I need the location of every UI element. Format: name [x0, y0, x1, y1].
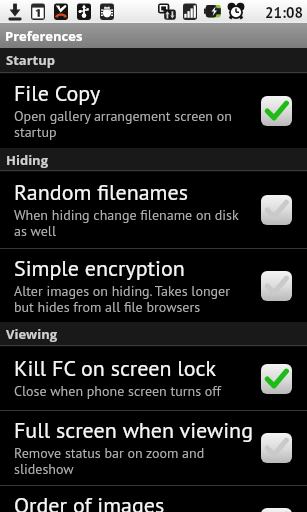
- other: Battery charging: [204, 3, 222, 21]
- button[interactable]: Not checked: [261, 195, 292, 225]
- button[interactable]: Checked: [261, 96, 292, 126]
- staticText: When hiding change filename on disk as w…: [14, 206, 246, 240]
- button[interactable]: Hiding: [0, 148, 307, 172]
- staticText: Order of images: [14, 491, 264, 512]
- button[interactable]: Order of images: [0, 486, 307, 512]
- staticText: Startup: [6, 51, 55, 69]
- button[interactable]: Checked: [261, 364, 292, 394]
- staticText: Close when phone screen turns off: [14, 382, 246, 400]
- staticText: Kill FC on screen lock: [14, 354, 264, 382]
- staticText: Random filenames: [14, 178, 264, 206]
- button[interactable]: Startup: [0, 48, 307, 74]
- button[interactable]: Full screen when viewing: [0, 411, 307, 485]
- button[interactable]: Simple encryption: [0, 249, 307, 322]
- other: USB connected: [75, 3, 93, 21]
- button[interactable]: Viewing: [0, 322, 307, 347]
- button[interactable]: Kill FC on screen lock: [0, 347, 307, 410]
- button[interactable]: Not checked: [261, 433, 292, 463]
- other: Mobile data: [158, 3, 176, 21]
- staticText: Open gallery arrangement screen on start…: [14, 107, 246, 141]
- other: Missed call: [52, 3, 70, 21]
- button[interactable]: File Copy: [0, 74, 307, 148]
- staticText: Preferences: [5, 27, 83, 45]
- staticText: Remove status bar on zoom and slideshow: [14, 444, 246, 478]
- button[interactable]: Random filenames: [0, 172, 307, 248]
- staticText: 21:08: [265, 3, 304, 22]
- other: Alarm set: [227, 3, 245, 21]
- staticText: Hiding: [6, 151, 48, 169]
- staticText: Viewing: [6, 325, 58, 343]
- staticText: Full screen when viewing: [14, 416, 264, 444]
- other: Calendar event: [29, 3, 47, 21]
- other: Signal strength: [181, 3, 199, 21]
- other: USB debugging: [98, 3, 116, 21]
- button[interactable]: Not checked: [261, 271, 292, 301]
- staticText: Simple encryption: [14, 254, 264, 282]
- other: Downloading: [6, 3, 24, 21]
- button[interactable]: Not checked: [261, 508, 292, 512]
- staticText: File Copy: [14, 79, 264, 107]
- staticText: Alter images on hiding. Takes longer but…: [14, 282, 246, 316]
